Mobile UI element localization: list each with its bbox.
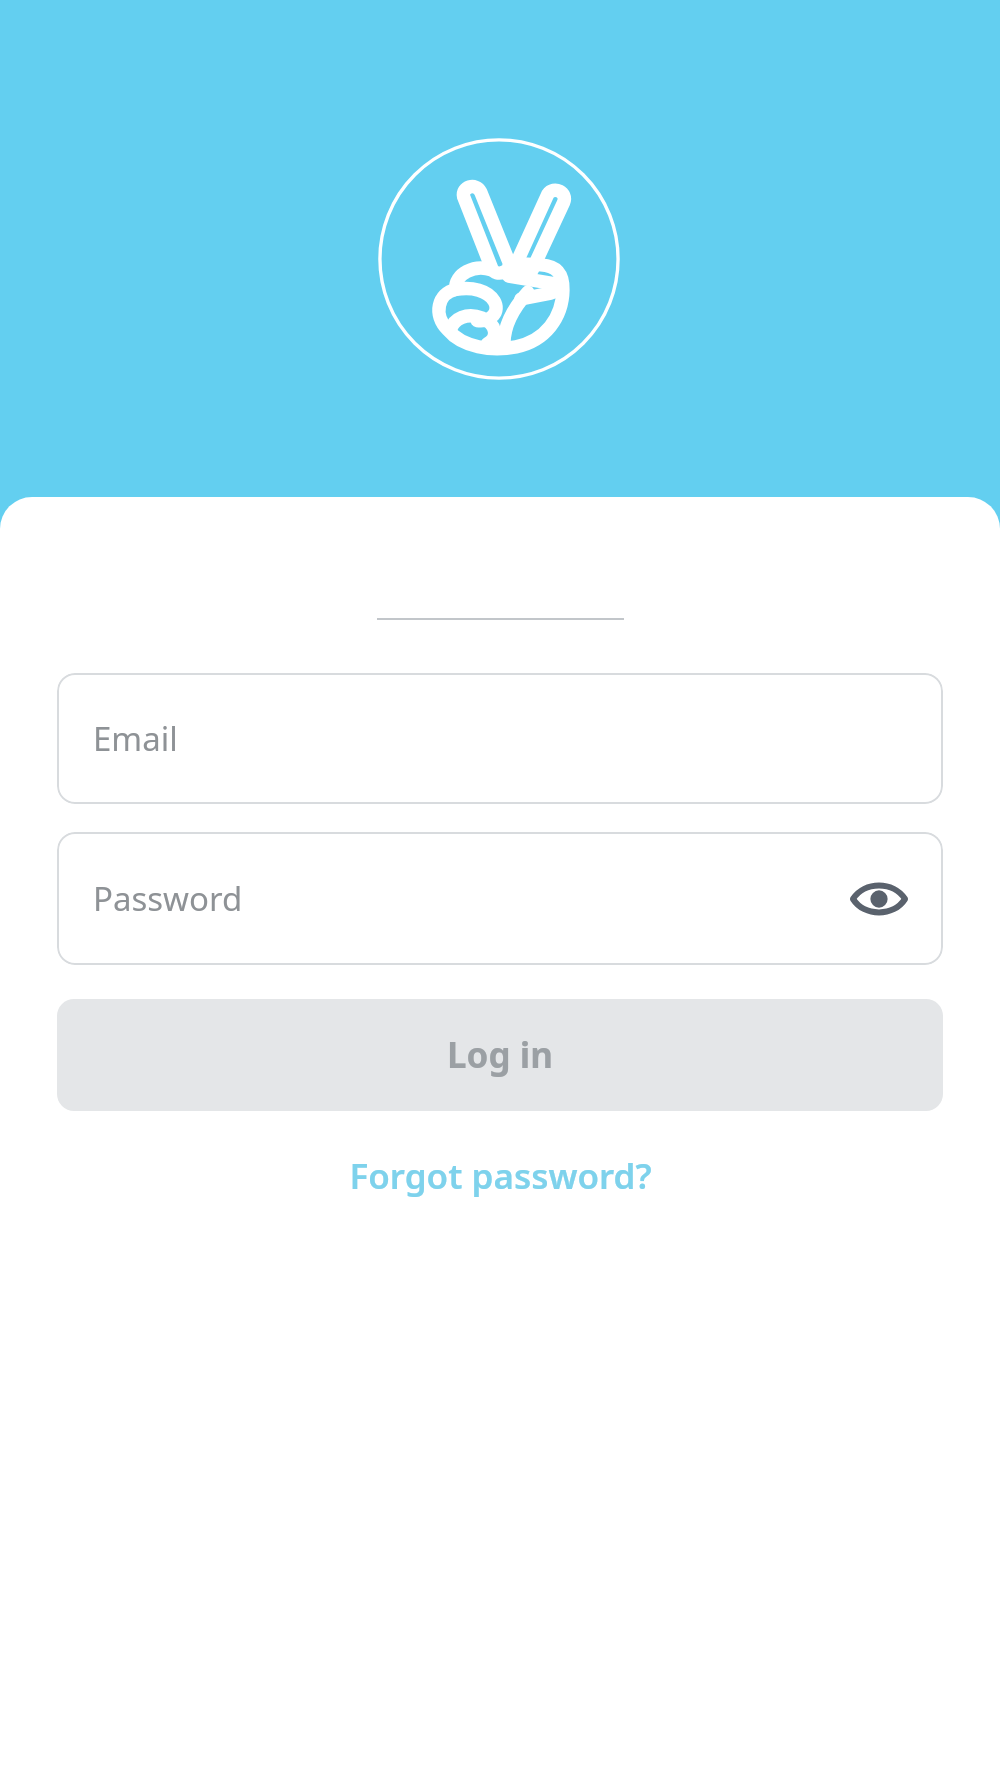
staticText: Email: [93, 716, 178, 761]
button[interactable]: Show password: [843, 863, 915, 935]
button[interactable]: Email: [57, 673, 943, 804]
button[interactable]: Log in: [57, 999, 943, 1111]
staticText: Log in: [447, 1031, 553, 1079]
staticText: Password: [93, 876, 243, 921]
button[interactable]: Forgot password?: [320, 1140, 680, 1212]
button[interactable]: Password: [57, 832, 943, 965]
staticText: Forgot password?: [349, 1152, 652, 1200]
